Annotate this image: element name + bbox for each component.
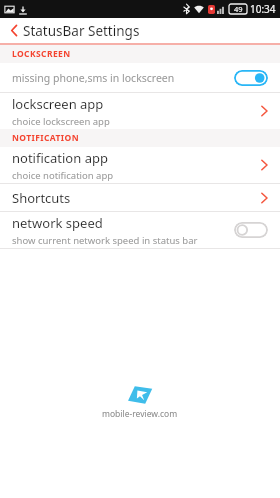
staticText: missing phone,sms in lockscreen — [12, 71, 175, 85]
staticText: show current network speed in status bar — [12, 234, 198, 247]
staticText: mobile-review.com — [102, 408, 178, 420]
staticText: LOCKSCREEN — [12, 48, 71, 60]
button[interactable]: notification app — [0, 147, 280, 183]
button[interactable]: Off — [234, 222, 268, 238]
button[interactable]: Shortcuts — [0, 184, 280, 211]
staticText: NOTIFICATION — [12, 132, 79, 144]
staticText: Shortcuts — [12, 189, 71, 207]
button[interactable]: Back — [0, 21, 23, 40]
staticText: notification app — [12, 149, 108, 167]
staticText: network speed — [12, 214, 103, 232]
staticText: StatusBar Settings — [23, 22, 140, 40]
staticText: lockscreen app — [12, 95, 104, 113]
staticText: choice lockscreen app — [12, 115, 110, 128]
button[interactable]: missing phone,sms in lockscreen — [0, 63, 280, 92]
button[interactable]: network speed — [0, 212, 280, 248]
button[interactable]: On — [234, 70, 268, 86]
staticText: 49 — [234, 4, 243, 14]
staticText: 10:34 — [250, 2, 276, 16]
button[interactable]: lockscreen app — [0, 93, 280, 129]
staticText: choice notification app — [12, 169, 114, 182]
